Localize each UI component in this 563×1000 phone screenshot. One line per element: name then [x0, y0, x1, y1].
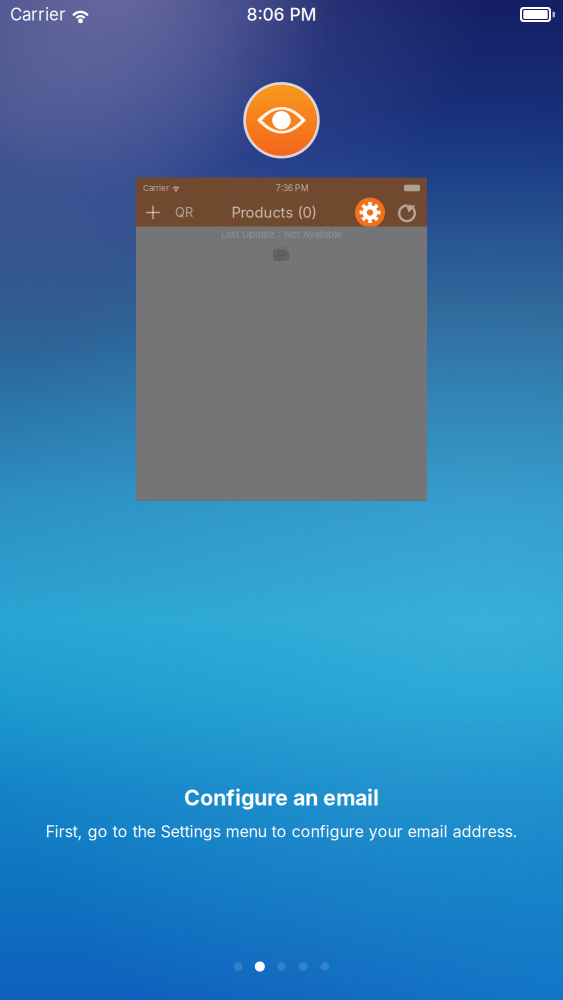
button[interactable]: Page 5 of 5 — [314, 961, 336, 972]
staticText: QR — [175, 205, 193, 220]
staticText: 8:06 PM — [246, 4, 316, 25]
staticText: Last Update : Not Available — [221, 228, 342, 240]
staticText: Configure an email — [184, 785, 379, 811]
staticText: 7:36 PM — [276, 183, 309, 193]
button[interactable]: Page 3 of 5 — [271, 961, 292, 972]
staticText: First, go to the Settings menu to config… — [45, 822, 517, 841]
button[interactable]: Page 1 of 5 — [227, 961, 249, 972]
staticText: Carrier — [10, 4, 65, 25]
staticText: Carrier — [143, 183, 169, 193]
staticText: Products (0) — [231, 204, 316, 221]
button[interactable]: Page 2 of 5 — [249, 961, 271, 972]
button[interactable]: Page 4 of 5 — [292, 961, 314, 972]
